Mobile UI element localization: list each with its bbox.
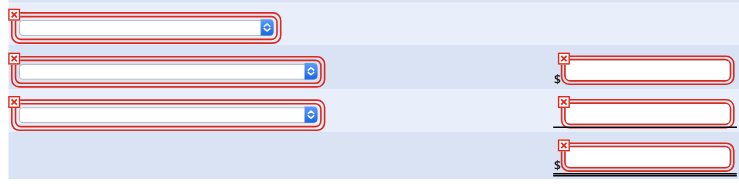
button[interactable]: Error: total amount required	[558, 139, 570, 151]
button[interactable]: Amount field, row 3	[561, 99, 735, 129]
button[interactable]: Amount field, row 2	[561, 56, 735, 86]
button[interactable]: Total amount field	[561, 142, 735, 172]
button[interactable]: Error: row 3 amount required	[558, 96, 570, 108]
button[interactable]: Error: row 2 amount required	[558, 53, 570, 65]
button[interactable]: Item 3 selector	[11, 99, 325, 131]
button[interactable]: Item 1 selector	[11, 12, 282, 44]
button[interactable]: Error: row 3 selection required	[8, 96, 20, 108]
button[interactable]: Item 2 selector	[11, 56, 325, 88]
button[interactable]: Error: row 2 selection required	[8, 53, 20, 65]
button[interactable]: Error: row 1 selection required	[8, 9, 20, 21]
